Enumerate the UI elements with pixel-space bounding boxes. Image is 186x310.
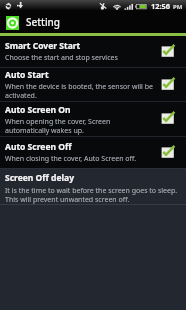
button[interactable]: Toggle — [156, 107, 180, 129]
staticText: 12:56 — [151, 1, 170, 11]
staticText: It is the time to wait before the screen… — [5, 186, 181, 204]
staticText: Screen Off delay — [5, 172, 75, 184]
staticText: Auto Screen Off — [5, 141, 72, 153]
button[interactable]: Auto Start — [0, 68, 186, 101]
button[interactable]: Toggle — [156, 141, 180, 163]
staticText: Smart Cover Start — [5, 40, 81, 52]
staticText: When closing the cover, Auto Screen off. — [5, 154, 137, 164]
staticText: PM — [173, 3, 183, 11]
staticText: Auto Screen On — [5, 104, 71, 116]
staticText: When the device is booted, the sensor wi… — [5, 82, 153, 100]
button[interactable]: Auto Screen Off — [0, 137, 186, 168]
button[interactable]: App icon — [6, 16, 19, 30]
staticText: Auto Start — [5, 69, 49, 81]
button[interactable]: Toggle — [156, 73, 180, 95]
button[interactable]: Smart Cover Start — [0, 36, 186, 67]
button[interactable]: Screen Off delay — [0, 169, 186, 204]
button[interactable]: Toggle — [156, 40, 180, 62]
staticText: Setting — [26, 15, 61, 29]
staticText: Choose the start and stop services — [5, 53, 118, 63]
button[interactable]: Auto Screen On — [0, 102, 186, 136]
staticText: When opening the cover, Screen automatic… — [5, 117, 153, 135]
